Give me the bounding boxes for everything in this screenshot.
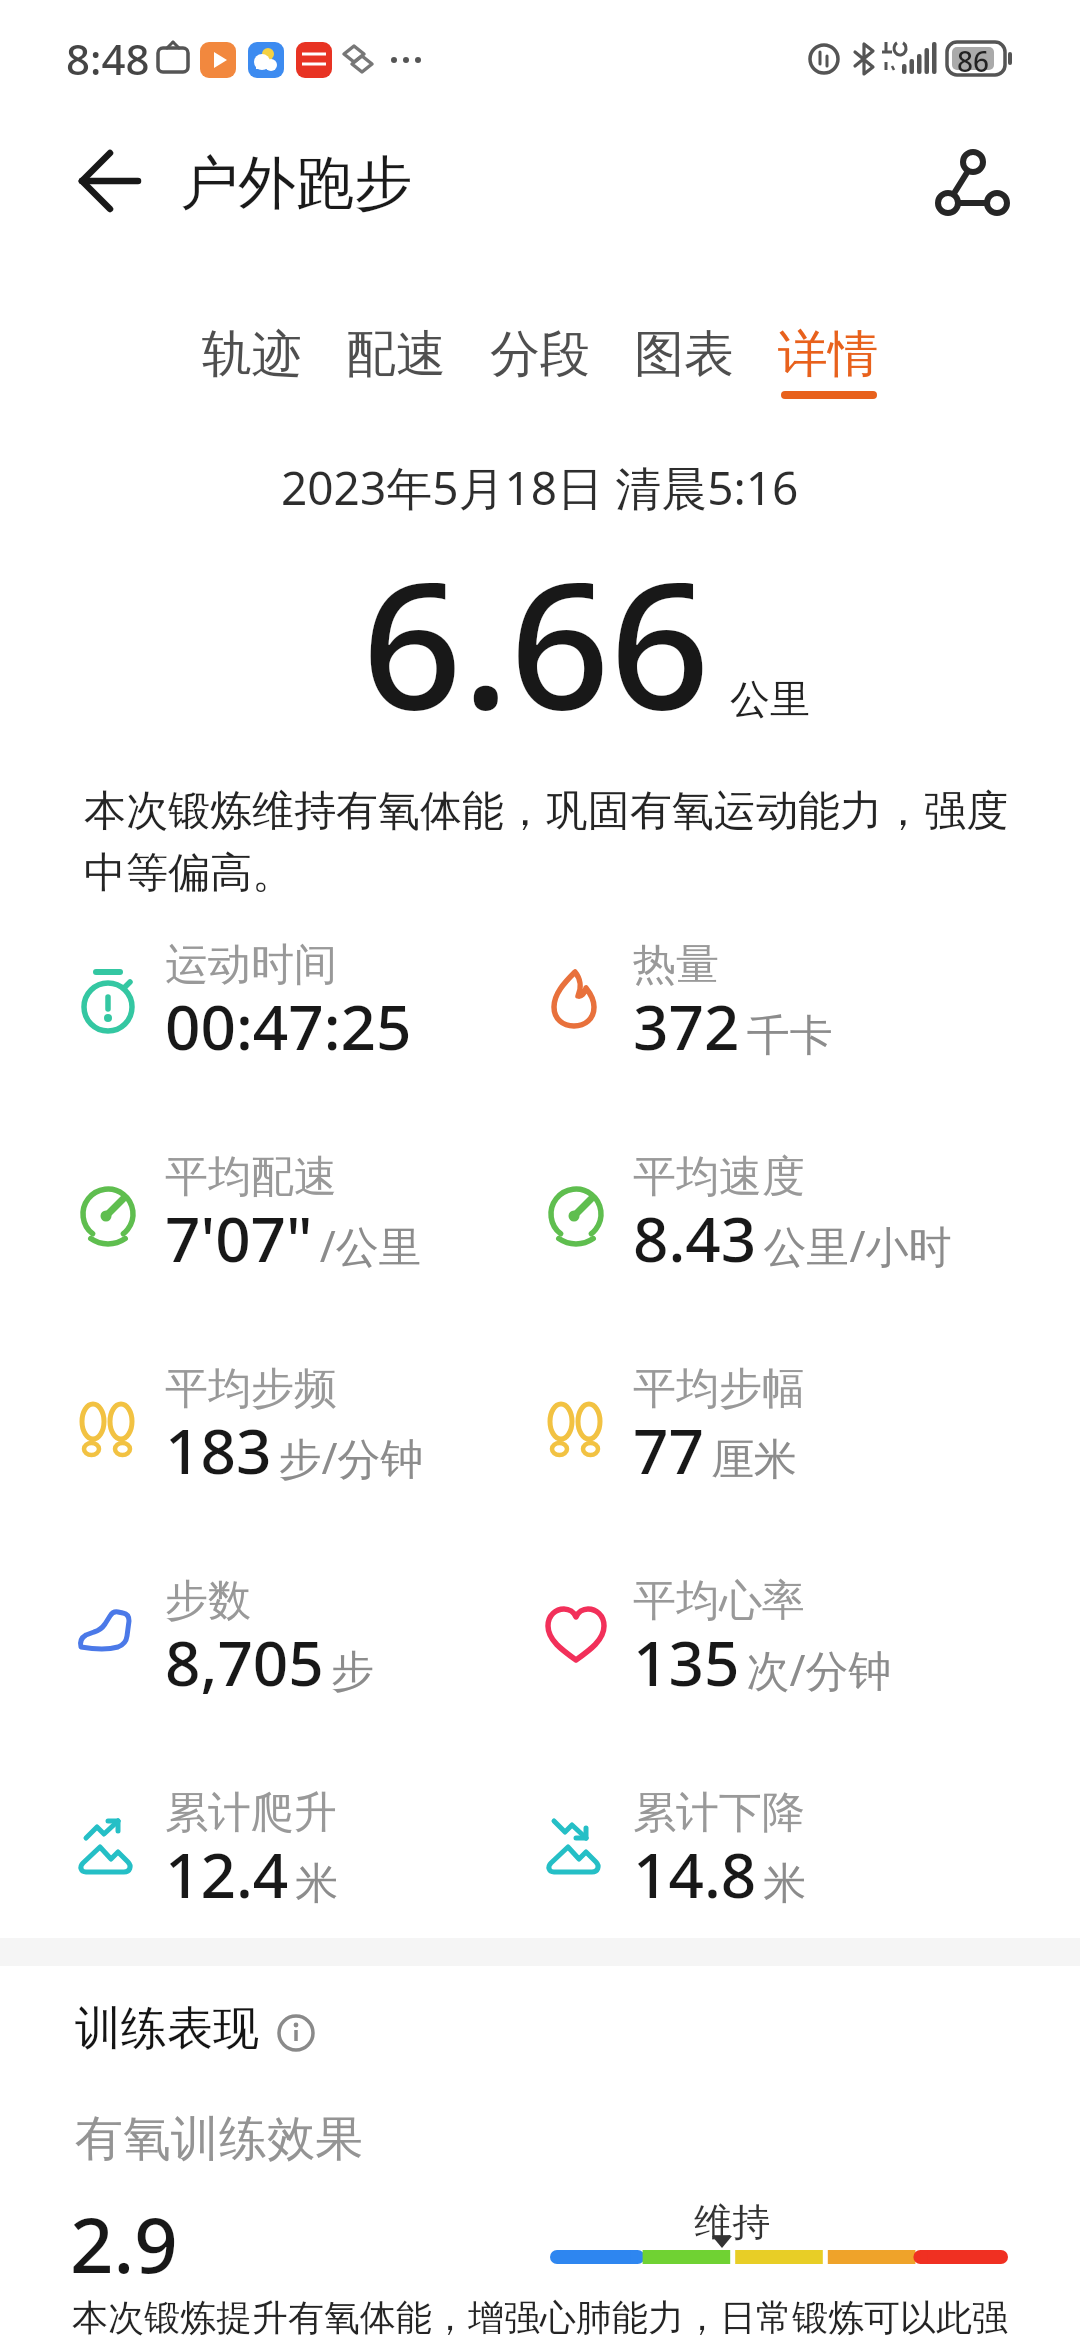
staticText: 135 次/分钟 — [633, 1620, 892, 1704]
staticText: 本次锻炼提升有氧体能，增强心肺能力，日常锻炼可以此强 — [72, 2295, 1008, 2340]
staticText: 详情 — [778, 323, 878, 386]
button[interactable] — [70, 145, 146, 221]
staticText: 14.8 米 — [633, 1832, 807, 1916]
staticText: 轨迹 — [202, 323, 302, 386]
staticText: 8,705 步 — [165, 1620, 374, 1704]
button[interactable] — [930, 140, 1010, 220]
staticText: 累计下降 — [633, 1786, 805, 1840]
staticText: 183 步/分钟 — [165, 1408, 424, 1492]
staticText: 分段 — [490, 323, 590, 386]
staticText: 图表 — [634, 323, 734, 386]
staticText: 户外跑步 — [180, 147, 412, 220]
staticText: 有氧训练效果 — [75, 2109, 363, 2169]
staticText: 配速 — [346, 323, 446, 386]
staticText: 运动时间 — [165, 938, 337, 992]
staticText: 累计爬升 — [165, 1786, 337, 1840]
button[interactable]: 分段 — [490, 323, 590, 386]
staticText: 步数 — [165, 1574, 251, 1628]
staticText: 2.9 — [70, 2192, 178, 2296]
staticText: 中等偏高。 — [84, 847, 294, 900]
staticText: 77 厘米 — [633, 1408, 798, 1492]
staticText: 平均步幅 — [633, 1362, 805, 1416]
staticText: 平均步频 — [165, 1362, 337, 1416]
staticText: 训练表现 — [75, 2000, 259, 2058]
staticText: 86 — [957, 42, 990, 80]
staticText: 公里 — [730, 674, 810, 724]
staticText: 00:47:25 — [165, 984, 412, 1068]
button[interactable]: 轨迹 — [202, 323, 302, 386]
button[interactable]: 详情 — [778, 323, 878, 386]
staticText: 维持 — [694, 2198, 770, 2246]
staticText: 6.66 — [362, 522, 710, 760]
staticText: 12.4 米 — [165, 1832, 339, 1916]
staticText: 7'07" /公里 — [165, 1196, 422, 1280]
staticText: 372 千卡 — [633, 984, 833, 1068]
button[interactable] — [277, 2014, 315, 2052]
staticText: 8:48 — [66, 30, 150, 87]
staticText: 平均速度 — [633, 1150, 805, 1204]
staticText: 8.43 公里/小时 — [633, 1196, 952, 1280]
button[interactable]: 图表 — [634, 323, 734, 386]
button[interactable]: 配速 — [346, 323, 446, 386]
staticText: 本次锻炼维持有氧体能，巩固有氧运动能力，强度 — [84, 785, 1008, 838]
staticText: 热量 — [633, 938, 719, 992]
staticText: 2023年5月18日 清晨5:16 — [281, 456, 799, 519]
staticText: 平均心率 — [633, 1574, 805, 1628]
staticText: 平均配速 — [165, 1150, 337, 1204]
